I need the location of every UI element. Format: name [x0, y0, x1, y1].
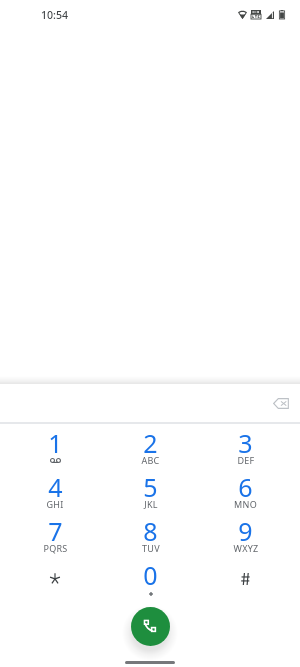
- button[interactable]: [7, 555, 103, 599]
- button[interactable]: 1: [7, 423, 103, 467]
- button[interactable]: Backspace: [264, 386, 298, 420]
- button[interactable]: Call: [131, 607, 170, 646]
- button[interactable]: 3: [198, 423, 293, 467]
- staticText: 0: [143, 558, 158, 592]
- button[interactable]: 8: [103, 511, 198, 555]
- button[interactable]: [198, 555, 293, 599]
- staticText: 6: [238, 470, 253, 504]
- staticText: ABC: [141, 454, 160, 466]
- button[interactable]: 6: [198, 467, 293, 511]
- staticText: 3: [238, 426, 253, 460]
- staticText: 9: [238, 514, 253, 548]
- staticText: 2: [143, 426, 158, 460]
- staticText: 8: [143, 514, 158, 548]
- staticText: 5: [143, 470, 158, 504]
- staticText: 10:54: [41, 8, 69, 22]
- button[interactable]: 5: [103, 467, 198, 511]
- button[interactable]: 0: [103, 555, 198, 599]
- staticText: GHI: [46, 498, 64, 510]
- staticText: 4: [48, 470, 63, 504]
- button[interactable]: 7: [7, 511, 103, 555]
- staticText: MNO: [234, 498, 257, 510]
- staticText: 7: [48, 514, 63, 548]
- staticText: TUV: [142, 542, 160, 554]
- button[interactable]: 4: [7, 467, 103, 511]
- staticText: DEF: [237, 454, 255, 466]
- staticText: PQRS: [43, 542, 68, 554]
- button[interactable]: 9: [198, 511, 293, 555]
- staticText: JKL: [144, 498, 158, 510]
- staticText: WXYZ: [233, 542, 259, 554]
- staticText: 1: [48, 426, 63, 460]
- button[interactable]: 2: [103, 423, 198, 467]
